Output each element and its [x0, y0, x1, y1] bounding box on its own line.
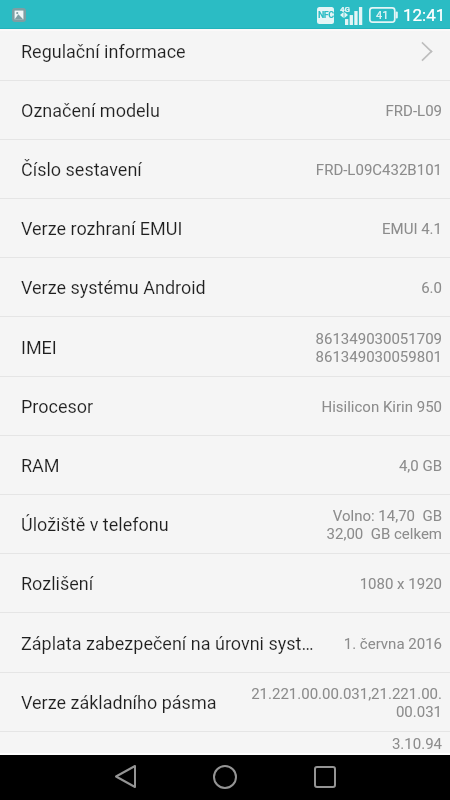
staticText: 41: [376, 9, 389, 22]
button[interactable]: Záplata zabezpečení na úrovni systému: [0, 614, 450, 673]
staticText: Volno: 14,70 GB: [332, 507, 442, 525]
staticText: Verze základního pásma: [21, 692, 231, 713]
staticText: 861349030051709: [315, 330, 442, 348]
staticText: Regulační informace: [21, 41, 422, 62]
staticText: 6.0: [421, 279, 442, 297]
staticText: Číslo sestavení: [21, 159, 295, 180]
staticText: 1080 x 1920: [359, 575, 442, 593]
staticText: 21.221.00.00.031,21.221.00.: [251, 685, 442, 703]
staticText: IMEI: [21, 337, 295, 358]
staticText: 32,00 GB celkem: [326, 525, 442, 543]
staticText: 4G: [340, 5, 351, 14]
staticText: RAM: [21, 455, 378, 476]
button[interactable]: IMEI: [0, 318, 450, 377]
button[interactable]: Rozlišení: [0, 554, 450, 613]
button[interactable]: Procesor: [0, 377, 450, 436]
staticText: Úložiště v telefonu: [21, 514, 306, 535]
staticText: Procesor: [21, 396, 301, 417]
staticText: FRD-L09: [385, 102, 442, 120]
button[interactable]: RAM: [0, 436, 450, 495]
staticText: 4,0 GB: [398, 457, 442, 475]
staticText: Verze rozhraní EMUI: [21, 218, 362, 239]
button[interactable]: Označení modelu: [0, 81, 450, 140]
button[interactable]: Home: [175, 755, 275, 800]
button[interactable]: Back: [75, 755, 175, 800]
staticText: 12:41: [403, 5, 446, 25]
button[interactable]: Verze rozhraní EMUI: [0, 199, 450, 258]
button[interactable]: Číslo sestavení: [0, 140, 450, 199]
button[interactable]: Regulační informace: [0, 29, 450, 81]
button[interactable]: Úložiště v telefonu: [0, 495, 450, 554]
staticText: Záplata zabezpečení na úrovni systému: [21, 633, 323, 654]
staticText: Označení modelu: [21, 100, 365, 121]
staticText: NFC: [318, 10, 334, 21]
staticText: 861349030059801: [315, 348, 442, 366]
staticText: Verze systému Android: [21, 277, 401, 298]
button[interactable]: Verze systému Android: [0, 258, 450, 317]
button[interactable]: Verze základního pásma: [0, 673, 450, 732]
staticText: 3.10.94: [391, 735, 442, 753]
staticText: 00.031: [395, 703, 442, 721]
staticText: Hisilicon Kirin 950: [321, 398, 442, 416]
button[interactable]: Recents: [275, 755, 375, 800]
staticText: Rozlišení: [21, 573, 339, 594]
button[interactable]: Verze jádra: [0, 732, 450, 753]
staticText: FRD-L09C432B101: [315, 161, 442, 179]
staticText: EMUI 4.1: [382, 220, 442, 238]
staticText: 1. června 2016: [343, 635, 442, 653]
